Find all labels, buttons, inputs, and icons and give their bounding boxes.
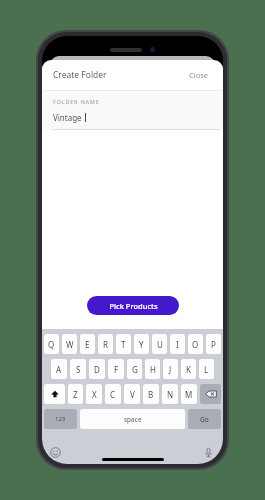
button[interactable]: space (80, 409, 185, 429)
button[interactable]: N (162, 384, 178, 404)
staticText: Q (48, 339, 55, 350)
staticText: Vintage (53, 112, 82, 123)
staticText: D (94, 364, 100, 375)
button[interactable]: V (124, 384, 140, 404)
button[interactable]: E (80, 334, 95, 354)
staticText: R (103, 339, 108, 350)
staticText: I (176, 339, 179, 350)
button[interactable]: Emoji keyboard (50, 447, 62, 459)
staticText: N (167, 389, 174, 400)
button[interactable]: Dictation (203, 447, 215, 459)
staticText: J (169, 364, 172, 375)
button[interactable]: Close (186, 67, 212, 83)
staticText: E (85, 339, 90, 350)
button[interactable]: Backspace (200, 384, 221, 404)
button[interactable]: FOLDER NAME (42, 91, 223, 130)
button[interactable]: A (51, 359, 67, 379)
staticText: M (185, 389, 193, 400)
staticText: C (110, 389, 116, 400)
staticText: X (92, 389, 97, 400)
staticText: Go (200, 415, 209, 424)
staticText: Y (139, 339, 144, 350)
staticText: A (56, 364, 62, 375)
staticText: L (204, 364, 209, 375)
staticText: 123 (55, 415, 66, 423)
button[interactable]: W (62, 334, 77, 354)
staticText: G (132, 364, 138, 375)
button[interactable]: Go (188, 409, 221, 429)
button[interactable]: Pick Products (87, 296, 179, 315)
button[interactable]: M (181, 384, 197, 404)
button[interactable]: D (89, 359, 105, 379)
button[interactable]: G (127, 359, 142, 379)
staticText: V (130, 389, 135, 400)
staticText: K (186, 364, 191, 375)
button[interactable]: L (199, 359, 214, 379)
staticText: F (114, 364, 119, 375)
button[interactable]: O (188, 334, 203, 354)
staticText: O (192, 339, 199, 350)
button[interactable]: C (105, 384, 121, 404)
staticText: FOLDER NAME (53, 98, 100, 106)
button[interactable]: U (152, 334, 167, 354)
staticText: space (124, 415, 142, 424)
staticText: W (66, 339, 74, 350)
staticText: Create Folder (53, 69, 107, 81)
button[interactable]: H (145, 359, 160, 379)
button[interactable]: X (86, 384, 102, 404)
button[interactable]: Shift (44, 384, 65, 404)
staticText: P (211, 339, 216, 350)
staticText: T (121, 339, 126, 350)
button[interactable]: Q (44, 334, 59, 354)
button[interactable]: S (70, 359, 86, 379)
button[interactable]: I (170, 334, 185, 354)
button[interactable]: P (206, 334, 221, 354)
staticText: H (150, 364, 156, 375)
staticText: S (76, 364, 81, 375)
staticText: Close (189, 70, 209, 80)
staticText: B (148, 389, 154, 400)
button[interactable]: F (108, 359, 124, 379)
staticText: U (157, 339, 163, 350)
button[interactable]: Y (134, 334, 149, 354)
button[interactable]: J (163, 359, 178, 379)
button[interactable]: R (98, 334, 113, 354)
button[interactable]: Z (68, 384, 83, 404)
staticText: Z (73, 389, 78, 400)
button[interactable]: B (143, 384, 159, 404)
staticText: Pick Products (109, 301, 158, 311)
button[interactable]: K (181, 359, 196, 379)
button[interactable]: T (116, 334, 131, 354)
button[interactable]: 123 (44, 409, 77, 429)
